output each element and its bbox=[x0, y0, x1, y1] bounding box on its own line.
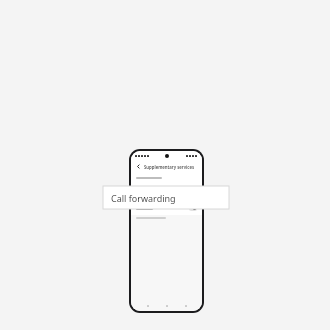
button[interactable]: Call waiting toggle bbox=[189, 206, 197, 211]
staticText: Call forwarding bbox=[111, 192, 176, 204]
button[interactable]: Call forwarding bbox=[103, 186, 229, 209]
button[interactable]: Navigation button bbox=[145, 303, 150, 308]
button[interactable] bbox=[131, 183, 202, 195]
staticText: Supplementary services bbox=[144, 164, 195, 170]
button[interactable]: Navigation button bbox=[164, 303, 169, 308]
button[interactable] bbox=[131, 173, 202, 183]
button[interactable]: Navigation button bbox=[183, 303, 188, 308]
button[interactable]: Back bbox=[131, 160, 202, 173]
button[interactable]: Back bbox=[135, 163, 142, 170]
button[interactable]: Call waiting toggle bbox=[131, 202, 202, 215]
